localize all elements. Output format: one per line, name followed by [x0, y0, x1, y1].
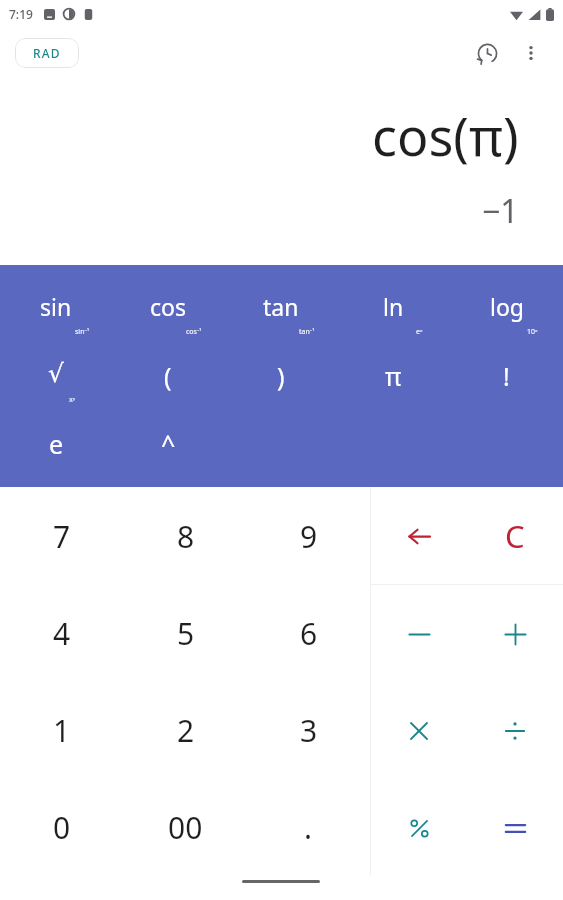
button[interactable]: ln: [337, 291, 450, 359]
button[interactable]: !: [450, 359, 563, 427]
button[interactable]: 2: [124, 682, 247, 779]
button[interactable]: More options: [511, 33, 551, 73]
staticText: sin⁻¹: [75, 327, 90, 337]
button[interactable]: ^: [112, 427, 224, 485]
staticText: ln: [383, 291, 404, 322]
other: Minus: [404, 619, 434, 649]
other: Percent: [404, 813, 434, 843]
staticText: 7: [53, 516, 71, 557]
button[interactable]: RAD: [15, 38, 79, 68]
button[interactable]: 1: [0, 682, 124, 779]
button[interactable]: History: [467, 33, 507, 73]
staticText: tan⁻¹: [299, 327, 315, 337]
button[interactable]: 8: [124, 487, 247, 585]
staticText: cos: [150, 291, 186, 322]
staticText: −1: [482, 189, 519, 233]
button[interactable]: 0: [0, 779, 124, 876]
staticText: π: [385, 359, 402, 393]
staticText: 0: [53, 807, 71, 848]
button[interactable]: 9: [247, 487, 370, 585]
button[interactable]: 4: [0, 585, 124, 682]
button[interactable]: Divide: [467, 682, 563, 779]
staticText: 2: [177, 710, 195, 751]
button[interactable]: 5: [124, 585, 247, 682]
button[interactable]: Equals: [467, 779, 563, 876]
staticText: 5: [177, 613, 195, 654]
staticText: 1: [53, 710, 71, 751]
button[interactable]: √: [0, 359, 112, 427]
button[interactable]: Multiply: [371, 682, 467, 779]
button[interactable]: cos: [112, 291, 224, 359]
staticText: log: [490, 291, 524, 322]
staticText: !: [503, 359, 510, 393]
button[interactable]: tan: [224, 291, 337, 359]
other: Multiply: [404, 716, 434, 746]
button[interactable]: 6: [247, 585, 370, 682]
button[interactable]: log: [450, 291, 563, 359]
other: Plus: [500, 619, 530, 649]
staticText: cos⁻¹: [186, 327, 202, 337]
other: Backspace: [404, 521, 434, 551]
staticText: ^: [161, 427, 176, 461]
staticText: cos(π): [372, 100, 519, 171]
staticText: 8: [177, 516, 195, 557]
staticText: tan: [263, 291, 299, 322]
other: Clear: [505, 515, 525, 557]
staticText: C: [505, 515, 525, 557]
staticText: 10ˣ: [527, 327, 538, 337]
other: Equals: [500, 813, 530, 843]
button[interactable]: .: [247, 779, 370, 876]
button[interactable]: e: [0, 427, 112, 485]
staticText: ): [277, 359, 285, 393]
staticText: xʸ: [69, 395, 76, 405]
button[interactable]: Plus: [467, 585, 563, 682]
button[interactable]: Minus: [371, 585, 467, 682]
staticText: (: [164, 359, 172, 393]
staticText: 9: [300, 516, 318, 557]
staticText: 6: [300, 613, 318, 654]
staticText: 4: [53, 613, 71, 654]
button[interactable]: π: [337, 359, 450, 427]
staticText: √: [48, 359, 64, 388]
staticText: 3: [300, 710, 318, 751]
staticText: 7:19: [9, 6, 33, 22]
other: Divide: [500, 716, 530, 746]
button[interactable]: Percent: [371, 779, 467, 876]
staticText: e: [49, 427, 64, 461]
button[interactable]: Backspace: [371, 487, 467, 584]
button[interactable]: (: [112, 359, 224, 427]
staticText: 00: [168, 807, 203, 848]
button[interactable]: ): [224, 359, 337, 427]
button[interactable]: 7: [0, 487, 124, 585]
button[interactable]: sin: [0, 291, 112, 359]
staticText: RAD: [33, 45, 61, 61]
staticText: .: [304, 807, 313, 848]
button[interactable]: 3: [247, 682, 370, 779]
button[interactable]: 00: [124, 779, 247, 876]
button[interactable]: Clear: [467, 487, 563, 584]
staticText: eˣ: [416, 327, 423, 337]
staticText: sin: [40, 291, 72, 322]
